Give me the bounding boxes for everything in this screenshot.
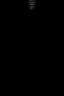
staticText: Display bbox=[29, 3, 34, 5]
staticText: General bbox=[29, 0, 35, 2]
staticText: Battery bbox=[29, 7, 34, 9]
staticText: Privacy bbox=[29, 5, 35, 7]
staticText: Sounds bbox=[29, 2, 35, 4]
